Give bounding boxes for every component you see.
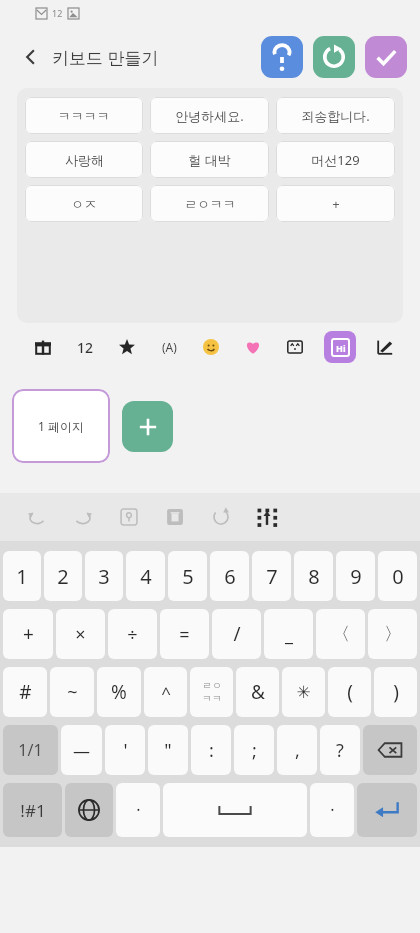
button[interactable]: ? (320, 725, 360, 775)
button[interactable]: # (3, 667, 47, 717)
staticText: 4 (140, 563, 152, 590)
button[interactable]: ~ (50, 667, 94, 717)
button[interactable]: 〉 (368, 609, 417, 659)
button[interactable]: 안녕하세요. (150, 97, 269, 134)
button[interactable]: Delete (160, 502, 190, 532)
button[interactable]: 7 (252, 551, 291, 601)
button[interactable]: Reset (313, 36, 355, 78)
staticText: ; (252, 738, 257, 763)
staticText: 7 (266, 563, 278, 590)
button[interactable]: 1 (3, 551, 41, 601)
staticText: · (136, 799, 141, 821)
button[interactable]: ㅋㅋㅋㅋ (25, 97, 143, 134)
button[interactable]: Gift (30, 334, 56, 360)
button[interactable]: Redo (68, 502, 98, 532)
button[interactable]: 1/1 (3, 725, 58, 775)
button[interactable]: ( (328, 667, 371, 717)
staticText: 안녕하세요. (175, 107, 244, 125)
button[interactable]: 1 페이지 (12, 389, 110, 463)
button[interactable]: 〈 (316, 609, 365, 659)
button[interactable]: Backspace (363, 725, 417, 775)
button[interactable]: 8 (294, 551, 333, 601)
staticText: 헐 대박 (188, 151, 231, 169)
staticText: 키보드 만들기 (52, 46, 159, 69)
button[interactable]: 5 (168, 551, 207, 601)
staticText: ㅇㅈ (71, 196, 97, 212)
staticText: / (233, 621, 241, 647)
button[interactable]: ✳ (282, 667, 325, 717)
staticText: (A) (162, 339, 177, 355)
staticText: ) (393, 679, 399, 705)
button[interactable]: Enter (357, 783, 417, 837)
button[interactable]: ㄹㅇㅋㅋ (150, 185, 269, 222)
button[interactable]: Help (261, 36, 303, 78)
button[interactable]: ' (105, 725, 145, 775)
button[interactable]: Space (163, 783, 307, 837)
button[interactable]: Arrange (252, 502, 282, 532)
button[interactable]: Star (114, 334, 140, 360)
staticText: , (295, 738, 300, 763)
staticText: & (251, 679, 265, 705)
button[interactable]: 9 (336, 551, 375, 601)
staticText: 〈 (332, 623, 350, 646)
button[interactable]: Back (14, 40, 48, 74)
button[interactable]: Text style (156, 334, 182, 360)
button[interactable]: Heart (240, 334, 266, 360)
button[interactable]: = (160, 609, 209, 659)
button[interactable]: : (191, 725, 231, 775)
button[interactable]: 헐 대박 (150, 141, 269, 178)
staticText: ㅋㅋㅋㅋ (58, 108, 110, 124)
button[interactable]: ^ (144, 667, 187, 717)
button[interactable]: & (236, 667, 279, 717)
button[interactable]: Emoji (198, 334, 224, 360)
staticText: ✳ (296, 682, 311, 702)
button[interactable]: Lock (114, 502, 144, 532)
button[interactable]: 2 (44, 551, 82, 601)
button[interactable]: / (212, 609, 261, 659)
button[interactable]: !#1 (3, 783, 62, 837)
button[interactable]: 6 (210, 551, 249, 601)
button[interactable]: " (148, 725, 188, 775)
button[interactable]: ) (374, 667, 417, 717)
button[interactable]: 3 (85, 551, 123, 601)
button[interactable]: + (276, 185, 395, 222)
button[interactable]: Refresh (206, 502, 236, 532)
button[interactable]: 0 (378, 551, 417, 601)
staticText: + (332, 195, 340, 213)
button[interactable]: × (56, 609, 105, 659)
button[interactable]: ; (234, 725, 274, 775)
staticText: 〉 (384, 623, 402, 646)
staticText: 12 (52, 7, 63, 19)
button[interactable]: 4 (126, 551, 165, 601)
button[interactable]: Draw (372, 334, 398, 360)
button[interactable]: Add page (122, 401, 173, 452)
staticText: ~ (67, 680, 78, 705)
button[interactable]: Text input (324, 331, 356, 363)
button[interactable]: · (116, 783, 160, 837)
staticText: 1/1 (18, 739, 43, 761)
button[interactable]: ㅇㅈ (25, 185, 143, 222)
button[interactable]: Language (65, 783, 113, 837)
button[interactable]: 사랑해 (25, 141, 143, 178)
button[interactable]: — (61, 725, 102, 775)
button[interactable]: , (277, 725, 317, 775)
button[interactable]: Undo (22, 502, 52, 532)
staticText: 5 (182, 563, 194, 590)
button[interactable]: · (310, 783, 354, 837)
staticText: ( (347, 679, 353, 705)
button[interactable]: + (3, 609, 53, 659)
staticText: # (19, 679, 32, 705)
button[interactable]: ㄹㅇ (190, 667, 233, 717)
staticText: " (164, 738, 172, 763)
staticText: ^ (161, 681, 171, 704)
button[interactable]: Confirm (365, 36, 407, 78)
button[interactable]: % (97, 667, 141, 717)
staticText: — (73, 739, 90, 762)
button[interactable]: 죄송합니다. (276, 97, 395, 134)
button[interactable]: _ (264, 609, 313, 659)
button[interactable]: Sticker (282, 334, 308, 360)
button[interactable]: ÷ (108, 609, 157, 659)
button[interactable]: 12 (72, 334, 98, 360)
staticText: 1 페이지 (38, 418, 84, 434)
button[interactable]: 머선129 (276, 141, 395, 178)
